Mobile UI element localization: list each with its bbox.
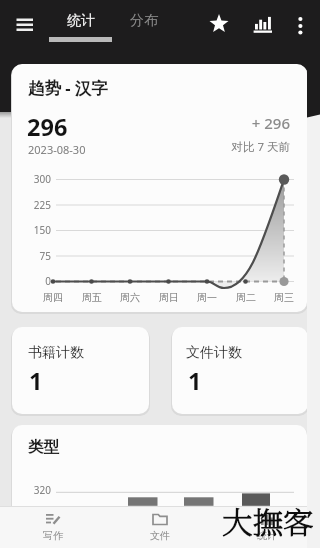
button[interactable]: 分布	[112, 0, 175, 42]
staticText: 对比 7 天前	[210, 139, 290, 155]
button[interactable]	[251, 8, 275, 36]
staticText: 周二	[227, 291, 265, 304]
staticText: 296	[27, 111, 68, 143]
button[interactable]	[207, 12, 231, 36]
staticText: 2023-08-30	[28, 142, 86, 157]
staticText: 文件	[150, 529, 170, 542]
staticText: 周五	[73, 291, 111, 304]
staticText: 75	[18, 249, 51, 263]
staticText: 周日	[150, 291, 188, 304]
staticText: 周三	[265, 291, 303, 304]
staticText: 150	[18, 223, 51, 237]
staticText: 统计	[257, 529, 277, 542]
button[interactable]	[172, 327, 308, 414]
button[interactable]: 统计	[49, 0, 112, 42]
staticText: 周一	[188, 291, 226, 304]
staticText: 统计	[67, 12, 95, 30]
staticText: 0	[18, 274, 51, 288]
button[interactable]	[12, 327, 149, 414]
staticText: 写作	[43, 529, 63, 542]
staticText: 书籍计数	[28, 344, 84, 362]
button[interactable]	[12, 12, 37, 37]
button[interactable]	[12, 64, 307, 312]
staticText: 文件计数	[186, 344, 242, 362]
staticText: 周六	[111, 291, 149, 304]
staticText: 225	[18, 198, 51, 212]
staticText: 大撫客	[222, 499, 314, 543]
staticText: 320	[18, 483, 51, 497]
staticText: 周四	[34, 291, 72, 304]
staticText: 1	[188, 365, 202, 397]
button[interactable]: 写作	[13, 506, 93, 548]
button[interactable]	[12, 425, 307, 548]
staticText: 趋势 - 汉字	[28, 76, 108, 99]
staticText: 类型	[28, 437, 59, 457]
staticText: 分布	[130, 12, 158, 30]
button[interactable]: 统计	[227, 506, 307, 548]
staticText: 300	[18, 172, 51, 186]
staticText: + 296	[210, 113, 290, 133]
button[interactable]: 文件	[120, 506, 200, 548]
staticText: 1	[29, 365, 43, 397]
button[interactable]	[288, 13, 312, 37]
